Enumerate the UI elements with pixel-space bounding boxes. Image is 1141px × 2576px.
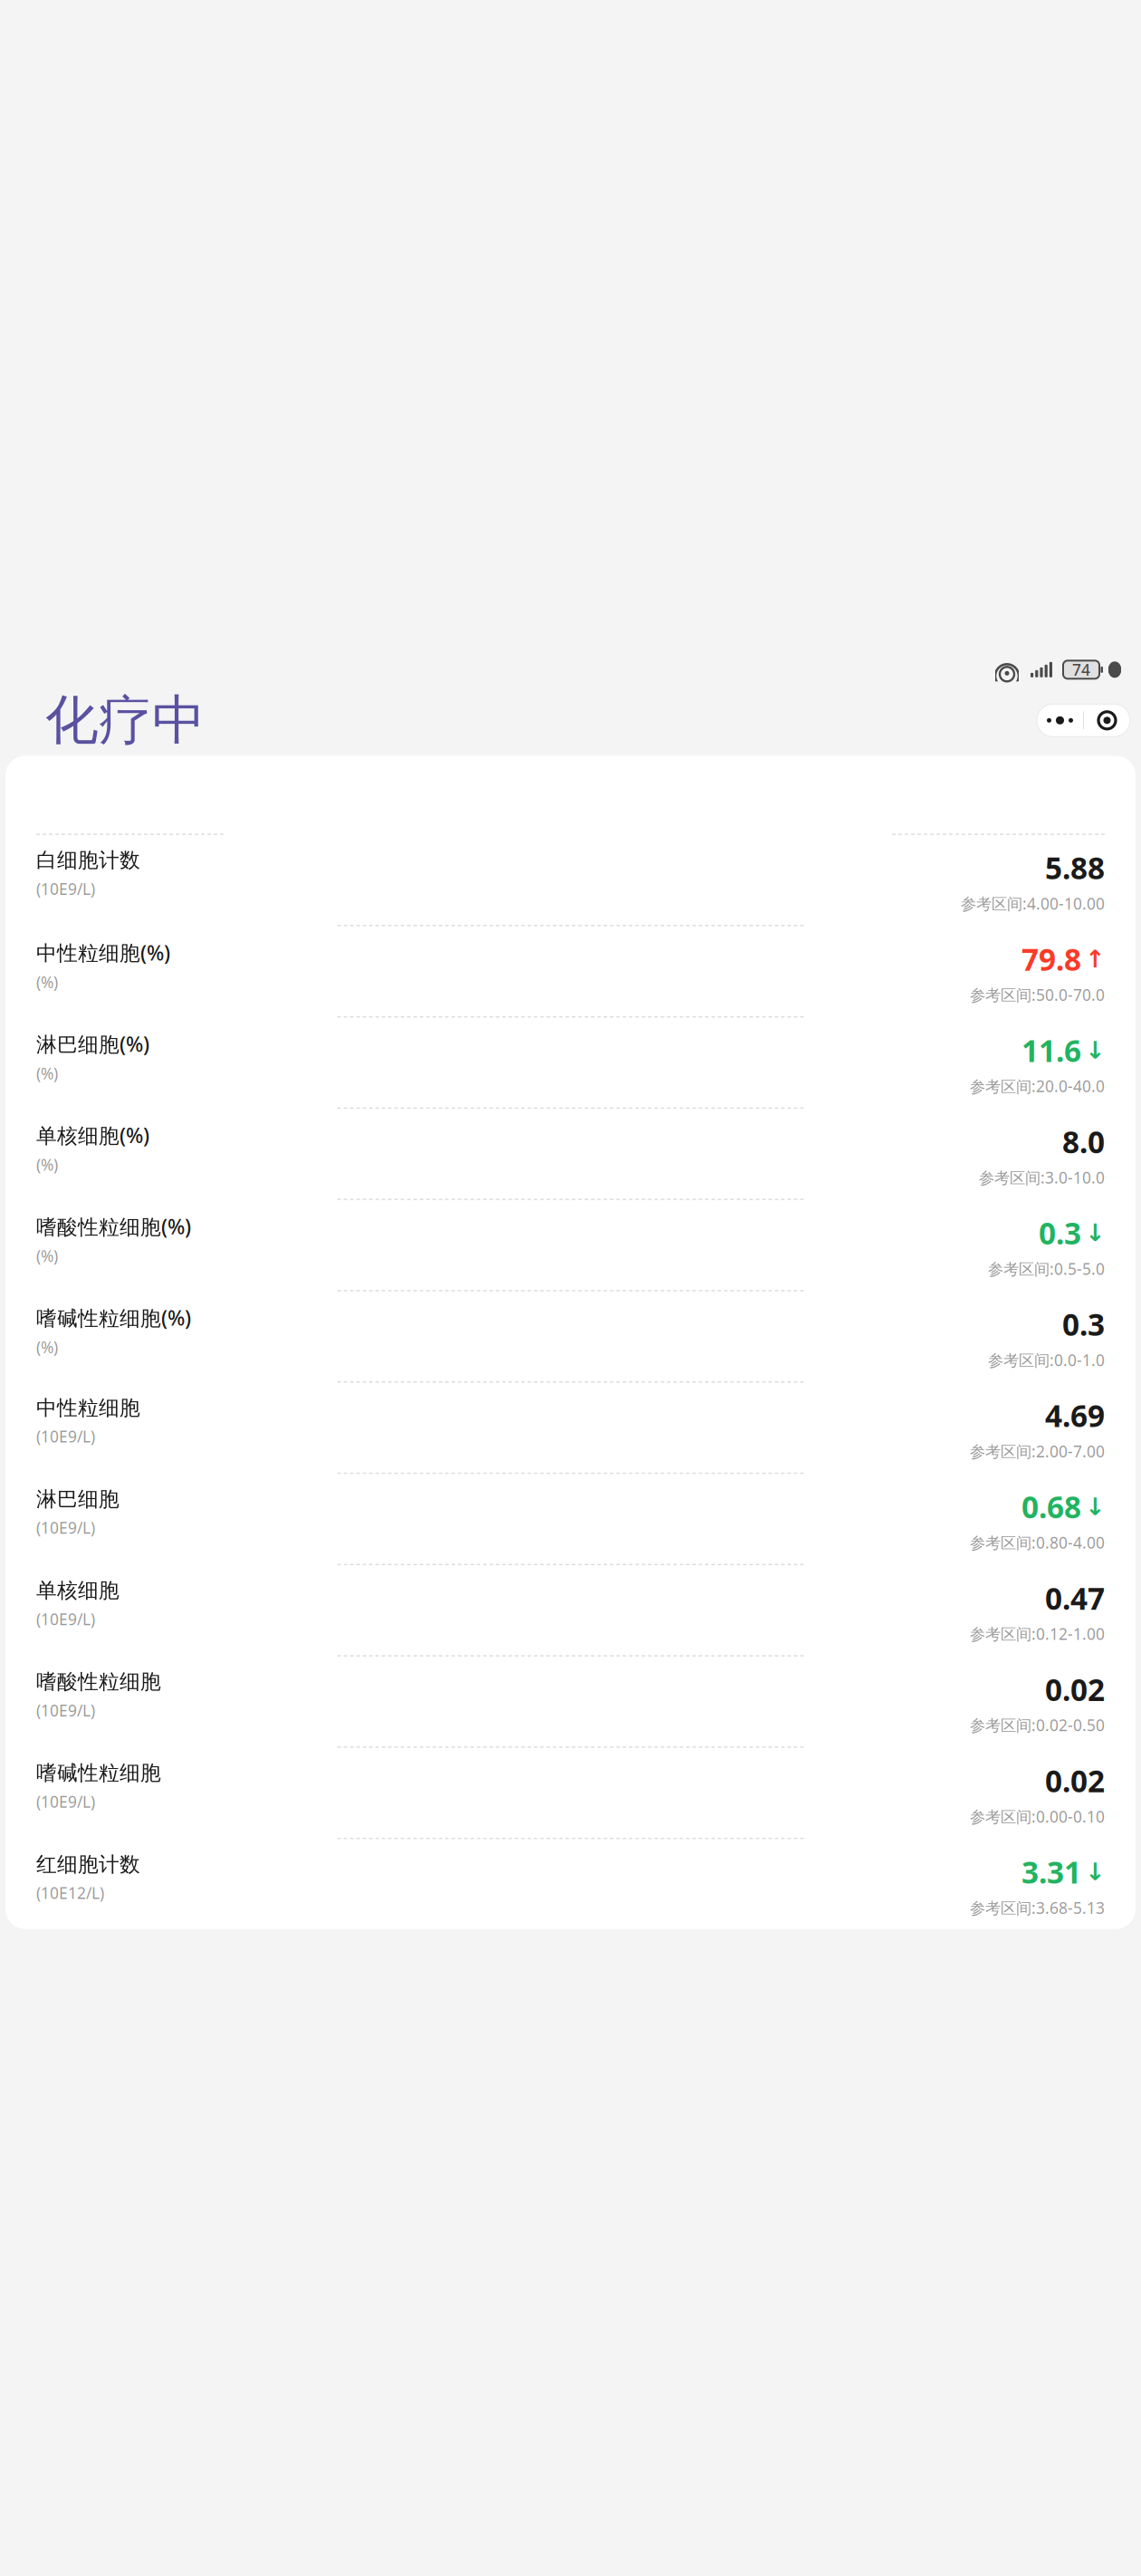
staticText: 参考区间:50.0-70.0 bbox=[970, 984, 1105, 1005]
staticText: (10E9/L) bbox=[36, 1517, 95, 1538]
staticText: ↑ bbox=[1085, 945, 1105, 973]
staticText: 白细胞计数 bbox=[36, 848, 140, 873]
button[interactable]: 嗜酸性粒细胞 bbox=[5, 1656, 1136, 1746]
button[interactable]: 单核细胞 bbox=[5, 1565, 1136, 1655]
staticText: 中性粒细胞(%) bbox=[36, 939, 170, 966]
staticText: 参考区间:0.12-1.00 bbox=[970, 1623, 1105, 1644]
staticText: 化疗中 bbox=[45, 688, 206, 753]
staticText: 淋巴细胞(%) bbox=[36, 1030, 149, 1057]
staticText: 4.69 bbox=[1045, 1395, 1105, 1435]
staticText: (10E9/L) bbox=[36, 878, 95, 899]
staticText: 嗜酸性粒细胞 bbox=[36, 1669, 161, 1694]
staticText: 11.6 bbox=[1021, 1030, 1081, 1070]
staticText: ↓ bbox=[1085, 1037, 1105, 1064]
staticText: (10E9/L) bbox=[36, 1426, 95, 1447]
staticText: 嗜碱性粒细胞 bbox=[36, 1760, 161, 1786]
staticText: 红细胞计数 bbox=[36, 1852, 140, 1877]
staticText: 嗜碱性粒细胞(%) bbox=[36, 1304, 191, 1331]
staticText: ↓ bbox=[1085, 1493, 1105, 1520]
button[interactable]: 更多 bbox=[1037, 704, 1083, 737]
button[interactable]: 中性粒细胞(%) bbox=[5, 926, 1136, 1016]
staticText: (%) bbox=[36, 1154, 58, 1175]
staticText: 8.0 bbox=[1062, 1122, 1105, 1162]
staticText: 5.88 bbox=[1045, 848, 1105, 888]
button[interactable]: 红细胞计数 bbox=[5, 1839, 1136, 1929]
button[interactable]: 中性粒细胞 bbox=[5, 1383, 1136, 1473]
staticText: 中性粒细胞 bbox=[36, 1395, 140, 1421]
staticText: 0.3 bbox=[1062, 1304, 1105, 1344]
staticText: 单核细胞(%) bbox=[36, 1122, 149, 1149]
staticText: (%) bbox=[36, 1245, 58, 1266]
staticText: ↓ bbox=[1085, 1219, 1105, 1247]
staticText: 参考区间:0.00-0.10 bbox=[970, 1806, 1105, 1827]
staticText: 参考区间:4.00-10.00 bbox=[961, 893, 1105, 914]
staticText: 单核细胞 bbox=[36, 1578, 120, 1603]
staticText: 参考区间:3.68-5.13 bbox=[970, 1897, 1105, 1918]
button[interactable]: 白细胞计数 bbox=[5, 835, 1136, 925]
button[interactable]: 嗜碱性粒细胞 bbox=[5, 1748, 1136, 1838]
staticText: 79.8 bbox=[1021, 939, 1081, 979]
staticText: ↓ bbox=[1085, 1858, 1105, 1886]
staticText: 参考区间:0.02-0.50 bbox=[970, 1715, 1105, 1736]
staticText: 74 bbox=[1072, 659, 1090, 680]
staticText: 嗜酸性粒细胞(%) bbox=[36, 1213, 191, 1240]
button[interactable]: 关闭 bbox=[1084, 704, 1130, 737]
staticText: (10E12/L) bbox=[36, 1882, 104, 1903]
staticText: (%) bbox=[36, 972, 58, 992]
button[interactable]: 淋巴细胞(%) bbox=[5, 1018, 1136, 1107]
staticText: 参考区间:20.0-40.0 bbox=[970, 1076, 1105, 1097]
staticText: (10E9/L) bbox=[36, 1700, 95, 1721]
staticText: 参考区间:2.00-7.00 bbox=[970, 1441, 1105, 1462]
staticText: 参考区间:0.5-5.0 bbox=[988, 1258, 1105, 1279]
staticText: (%) bbox=[36, 1063, 58, 1084]
staticText: 0.02 bbox=[1045, 1760, 1105, 1801]
staticText: (%) bbox=[36, 1337, 58, 1358]
staticText: 0.02 bbox=[1045, 1669, 1105, 1709]
staticText: 0.68 bbox=[1021, 1487, 1081, 1527]
button[interactable]: 嗜碱性粒细胞(%) bbox=[5, 1291, 1136, 1381]
staticText: 3.31 bbox=[1021, 1852, 1081, 1892]
staticText: (10E9/L) bbox=[36, 1609, 95, 1629]
button[interactable]: 嗜酸性粒细胞(%) bbox=[5, 1200, 1136, 1290]
staticText: 0.3 bbox=[1039, 1213, 1081, 1253]
staticText: 参考区间:0.80-4.00 bbox=[970, 1532, 1105, 1553]
staticText: 参考区间:3.0-10.0 bbox=[979, 1167, 1105, 1188]
staticText: (10E9/L) bbox=[36, 1791, 95, 1812]
button[interactable]: 单核细胞(%) bbox=[5, 1109, 1136, 1199]
staticText: 参考区间:0.0-1.0 bbox=[988, 1350, 1105, 1370]
button[interactable]: 淋巴细胞 bbox=[5, 1474, 1136, 1564]
staticText: 淋巴细胞 bbox=[36, 1487, 120, 1512]
staticText: 0.47 bbox=[1045, 1578, 1105, 1618]
